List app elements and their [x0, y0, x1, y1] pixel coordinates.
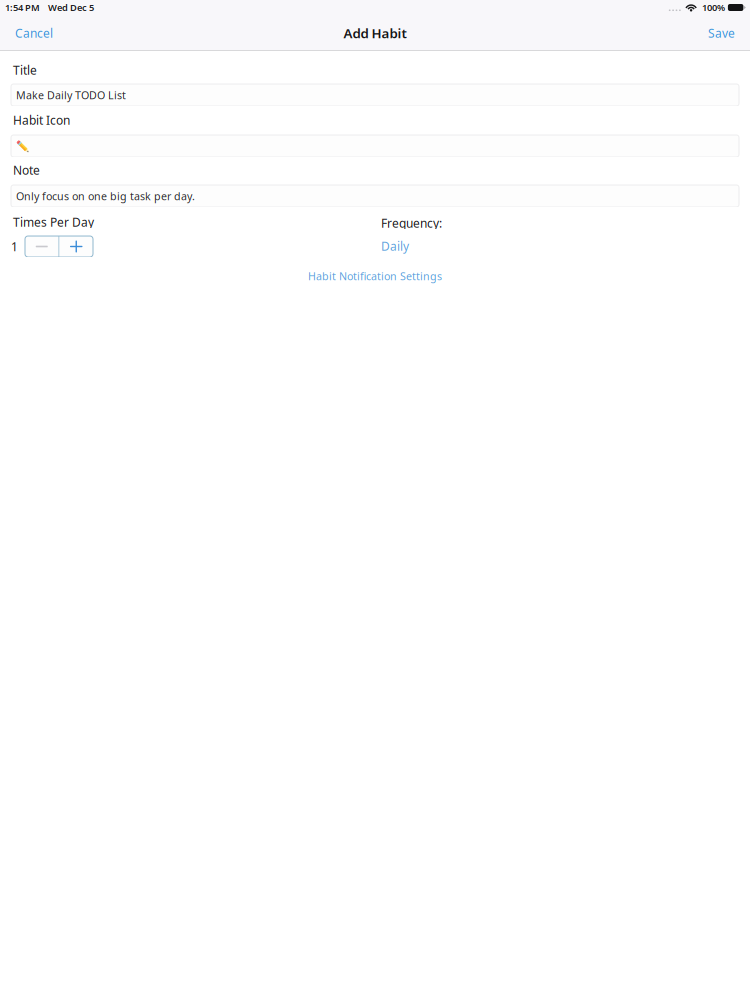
- staticText: Cancel: [15, 25, 53, 41]
- staticText: 100%: [702, 1, 725, 14]
- staticText: Add Habit: [343, 24, 406, 42]
- staticText: 1: [11, 238, 18, 254]
- staticText: Times Per Day: [13, 214, 94, 230]
- staticText: 1:54 PM: [5, 1, 40, 14]
- button[interactable]: Only focus on one big task per day.: [11, 185, 739, 207]
- staticText: ✏️: [16, 140, 29, 152]
- staticText: Make Daily TODO List: [16, 88, 126, 102]
- staticText: Daily: [381, 238, 409, 254]
- button[interactable]: Cancel: [11, 19, 57, 47]
- button[interactable]: Habit Notification Settings: [308, 268, 442, 284]
- button[interactable]: Decrease times per day: [25, 236, 58, 257]
- button[interactable]: ✏️: [11, 135, 739, 157]
- staticText: Note: [13, 162, 40, 178]
- staticText: Wed Dec 5: [48, 1, 94, 14]
- staticText: Save: [708, 25, 735, 41]
- button[interactable]: Increase times per day: [59, 236, 93, 257]
- staticText: Only focus on one big task per day.: [16, 189, 195, 203]
- button[interactable]: Save: [704, 19, 739, 47]
- button[interactable]: Make Daily TODO List: [11, 84, 739, 106]
- staticText: Title: [13, 62, 37, 78]
- button[interactable]: Daily: [381, 240, 409, 252]
- staticText: Frequency:: [381, 215, 442, 231]
- staticText: Habit Icon: [13, 112, 70, 128]
- staticText: Habit Notification Settings: [308, 269, 442, 283]
